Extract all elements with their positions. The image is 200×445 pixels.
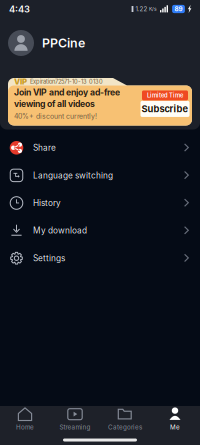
button[interactable]: My download [0,217,200,244]
staticText: 1.22 [135,5,147,13]
staticText: History [33,198,61,208]
staticText: viewing of all videos [14,98,95,109]
staticText: Expiration72571-10-13 0130 [30,78,103,85]
staticText: Categories [108,423,142,431]
button[interactable]: Categories [100,402,150,436]
button[interactable]: Streaming [50,402,100,436]
staticText: 40%+ discount currently! [14,112,97,120]
button[interactable]: VIP [8,78,192,125]
staticText: Join VIP and enjoy ad-free [14,87,120,97]
staticText: Share [33,143,56,153]
button[interactable]: Language switching [0,162,200,189]
staticText: 4:43 [9,3,30,15]
staticText: 89 [174,5,182,13]
button[interactable]: Settings [0,244,200,272]
button[interactable]: PPCine [0,18,200,56]
button[interactable]: Share [0,134,200,162]
staticText: Limited Time [147,92,183,99]
staticText: Home [16,423,34,431]
staticText: K/s [149,6,157,12]
staticText: Me [170,423,180,431]
staticText: PPCine [42,35,85,50]
staticText: Streaming [59,423,90,431]
staticText: VIP [14,77,27,86]
staticText: Subscribe [141,103,188,115]
button[interactable]: Home [0,402,50,436]
staticText: Language switching [33,170,113,180]
staticText: Settings [33,253,65,263]
staticText: My download [33,226,87,236]
button[interactable]: History [0,189,200,217]
button[interactable]: Me [150,402,200,436]
